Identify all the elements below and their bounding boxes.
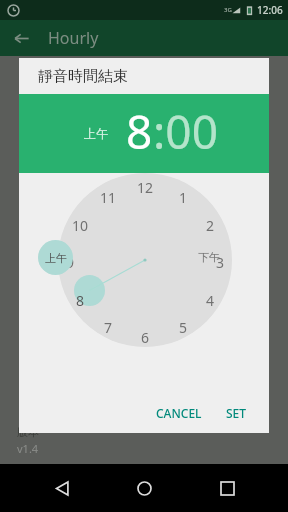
- button[interactable]: Back: [41, 467, 83, 509]
- button[interactable]: 9: [57, 249, 83, 275]
- staticText: 8: [126, 100, 153, 163]
- staticText: 12:06: [257, 3, 283, 17]
- staticText: 9: [66, 253, 75, 272]
- button[interactable]: [74, 275, 105, 306]
- staticText: 5: [179, 318, 188, 337]
- staticText: SET: [226, 405, 247, 421]
- button[interactable]: 5: [170, 314, 196, 340]
- button[interactable]: CANCEL: [148, 398, 210, 428]
- staticText: Hourly: [48, 27, 99, 49]
- staticText: 3G: [224, 6, 232, 14]
- button[interactable]: 上午: [38, 240, 73, 275]
- staticText: 2: [206, 216, 215, 235]
- button[interactable]: 10: [67, 212, 93, 238]
- button[interactable]: 上午: [82, 124, 110, 143]
- staticText: 8: [76, 291, 85, 310]
- staticText: CANCEL: [156, 405, 202, 421]
- button[interactable]: Recents: [206, 467, 248, 509]
- staticText: :00: [153, 100, 218, 163]
- staticText: 上午: [45, 251, 67, 265]
- button[interactable]: 7: [95, 314, 121, 340]
- button[interactable]: :00: [153, 100, 218, 163]
- staticText: 11: [100, 188, 117, 207]
- staticText: 6: [141, 328, 150, 347]
- staticText: 10: [72, 216, 89, 235]
- staticText: 4: [206, 291, 215, 310]
- button[interactable]: Back: [6, 23, 36, 53]
- staticText: 7: [104, 318, 113, 337]
- staticText: 下午: [198, 250, 220, 264]
- staticText: 1: [179, 188, 188, 207]
- staticText: 3: [216, 253, 225, 272]
- button[interactable]: Home: [123, 467, 165, 509]
- staticText: 上午: [84, 126, 108, 141]
- button[interactable]: 11: [95, 184, 121, 210]
- button[interactable]: 1: [170, 184, 196, 210]
- button[interactable]: 3: [207, 249, 233, 275]
- button[interactable]: 8: [126, 100, 153, 163]
- button[interactable]: 下午: [195, 247, 223, 267]
- staticText: 靜音時間結束: [38, 67, 128, 86]
- staticText: 版本: [17, 425, 39, 439]
- button[interactable]: 12: [132, 174, 158, 200]
- button[interactable]: 2: [197, 212, 223, 238]
- button[interactable]: SET: [218, 398, 255, 428]
- staticText: 12: [137, 178, 154, 197]
- button[interactable]: 4: [197, 287, 223, 313]
- button[interactable]: 8: [67, 287, 93, 313]
- button[interactable]: 6: [132, 324, 158, 350]
- staticText: v1.4: [17, 441, 39, 456]
